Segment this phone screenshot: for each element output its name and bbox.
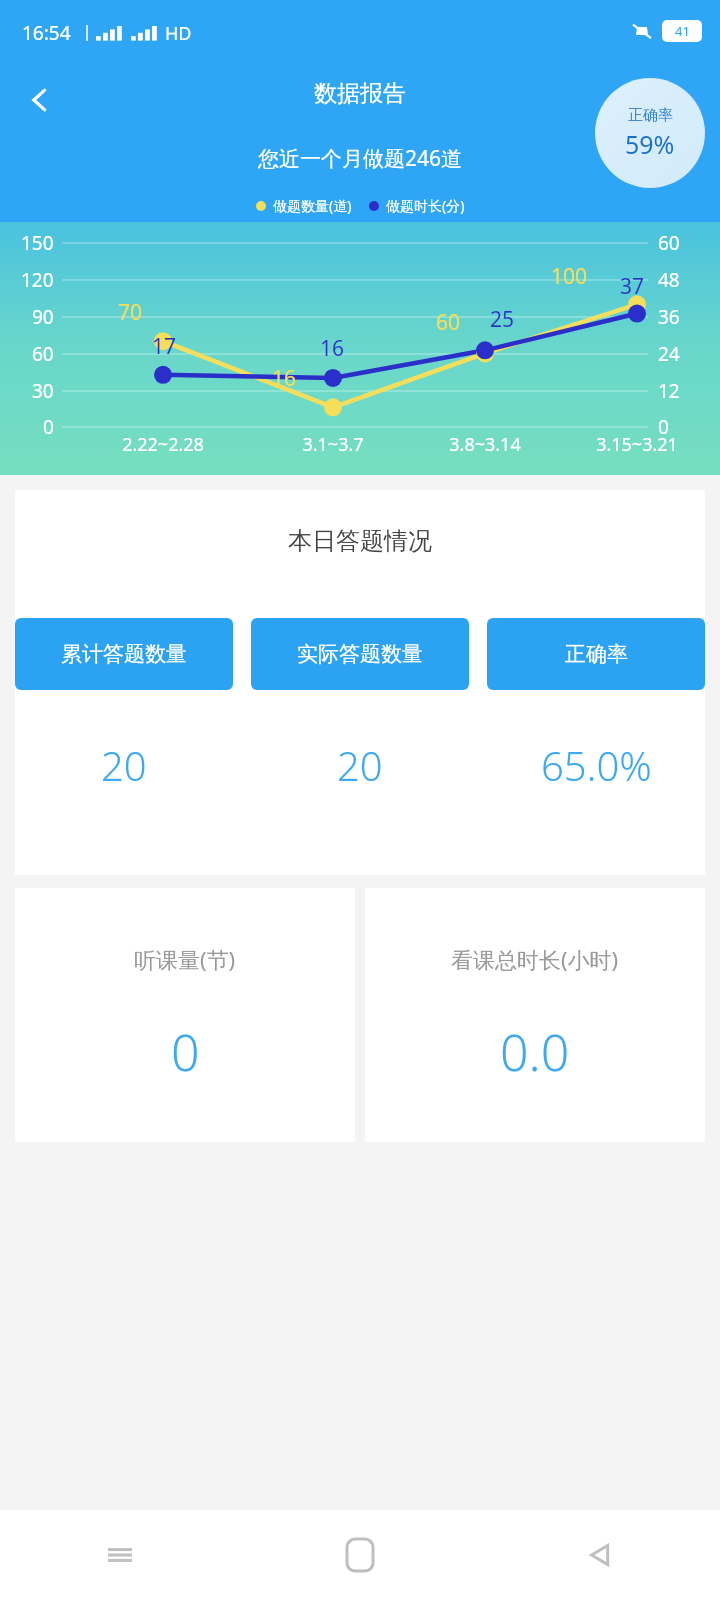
staticText: HD — [165, 21, 192, 46]
staticText: 0 — [43, 414, 54, 440]
staticText: 36 — [658, 304, 680, 330]
staticText: 60 — [658, 230, 680, 256]
staticText: 37 — [620, 272, 645, 301]
staticText: 3.15~3.21 — [596, 432, 678, 457]
staticText: 累计答题数量 — [61, 641, 187, 667]
staticText: 12 — [658, 378, 680, 404]
button[interactable]: 累计答题数量 — [15, 618, 233, 690]
button[interactable]: Recent apps — [0, 1510, 240, 1600]
staticText: 0.0 — [500, 1018, 570, 1086]
staticText: 41 — [675, 22, 690, 40]
staticText: 17 — [152, 332, 177, 361]
staticText: 3.1~3.7 — [302, 432, 364, 457]
button[interactable]: 看课总时长(小时) — [365, 888, 705, 1142]
staticText: 您近一个月做题246道 — [258, 144, 463, 173]
button[interactable]: 正确率 — [487, 618, 705, 690]
button[interactable]: 实际答题数量 — [251, 618, 469, 690]
staticText: 30 — [32, 378, 54, 404]
staticText: 正确率 — [565, 641, 628, 667]
button[interactable]: 听课量(节) — [15, 888, 355, 1142]
staticText: 65.0% — [541, 738, 652, 792]
staticText: 0 — [658, 414, 669, 440]
staticText: 本日答题情况 — [288, 526, 432, 556]
staticText: 做题时长(分) — [386, 196, 465, 215]
staticText: 16 — [272, 364, 297, 393]
staticText: 60 — [32, 341, 54, 367]
staticText: 20 — [101, 738, 147, 792]
staticText: 3.8~3.14 — [449, 432, 521, 457]
staticText: 90 — [32, 304, 54, 330]
staticText: 16 — [320, 334, 345, 363]
staticText: 150 — [21, 230, 54, 256]
staticText: 20 — [337, 738, 383, 792]
staticText: 70 — [118, 298, 143, 327]
staticText: 实际答题数量 — [297, 641, 423, 667]
staticText: 看课总时长(小时) — [451, 944, 619, 974]
staticText: 59% — [625, 127, 675, 161]
staticText: 听课量(节) — [134, 944, 236, 974]
staticText: 0 — [171, 1018, 200, 1086]
staticText: 数据报告 — [314, 79, 406, 108]
staticText: 24 — [658, 341, 680, 367]
staticText: 100 — [551, 262, 588, 291]
staticText: 正确率 — [628, 106, 673, 125]
staticText: 2.22~2.28 — [122, 432, 204, 457]
button[interactable]: Back — [480, 1510, 720, 1600]
staticText: 25 — [490, 305, 515, 334]
staticText: 120 — [21, 267, 54, 293]
button[interactable]: Home — [240, 1510, 480, 1600]
button[interactable]: Back — [12, 72, 68, 128]
button[interactable]: 正确率 — [595, 78, 705, 188]
staticText: 16:54 — [22, 20, 71, 46]
staticText: 60 — [436, 308, 461, 337]
staticText: 48 — [658, 267, 680, 293]
staticText: 做题数量(道) — [273, 196, 352, 215]
